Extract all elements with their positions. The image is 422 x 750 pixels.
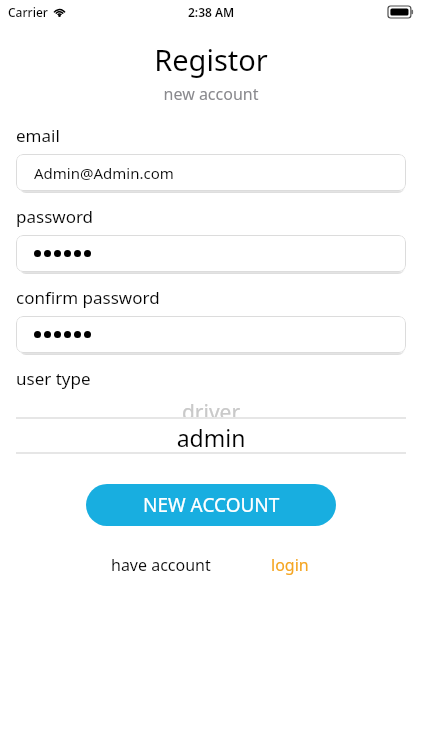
button[interactable]: Admin@Admin.com	[16, 154, 406, 191]
button[interactable]: NEW ACCOUNT	[86, 484, 336, 526]
button[interactable]: driver	[0, 398, 422, 460]
staticText: driver	[0, 398, 422, 427]
staticText: Carrier	[8, 4, 48, 20]
staticText: login	[271, 554, 309, 576]
staticText: confirm password	[16, 286, 160, 309]
staticText: Admin@Admin.com	[34, 163, 174, 183]
staticText: 2:38 AM	[188, 4, 235, 20]
staticText: have account	[111, 554, 211, 576]
button[interactable]	[16, 316, 406, 353]
staticText: email	[16, 124, 60, 147]
staticText: admin	[0, 422, 422, 453]
staticText: NEW ACCOUNT	[143, 492, 280, 518]
staticText: user type	[16, 367, 91, 390]
staticText: new account	[0, 83, 422, 105]
staticText: password	[16, 205, 94, 228]
staticText: Registor	[0, 40, 422, 79]
button[interactable]	[16, 235, 406, 272]
button[interactable]: login	[269, 552, 311, 578]
